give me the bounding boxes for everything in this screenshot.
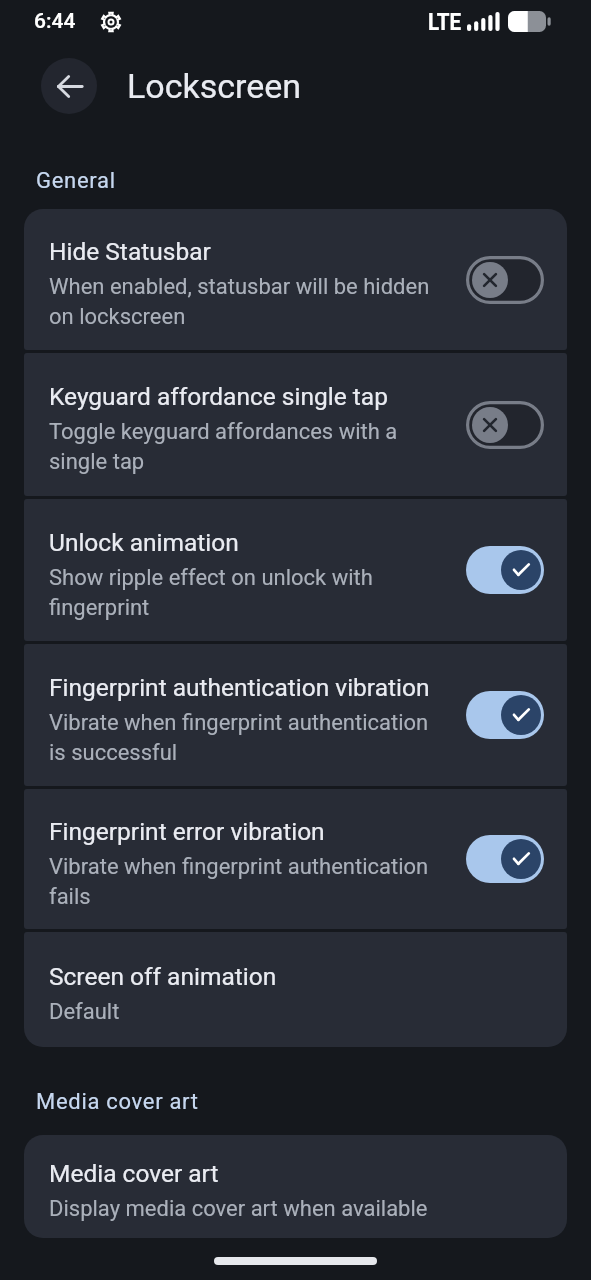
staticText: Vibrate when fingerprint authentication … xyxy=(49,850,442,910)
staticText: Toggle keyguard affordances with a singl… xyxy=(49,415,442,475)
button[interactable]: Toggle Hide Statusbar xyxy=(466,256,544,304)
button[interactable]: Toggle Fingerprint authentication vibrat… xyxy=(466,691,544,739)
staticText: General xyxy=(36,168,116,194)
staticText: Lockscreen xyxy=(127,66,302,106)
staticText: Media cover art xyxy=(36,1089,199,1115)
staticText: Vibrate when fingerprint authentication … xyxy=(49,706,442,766)
staticText: Media cover art xyxy=(49,1157,219,1189)
button[interactable]: Unlock animation xyxy=(24,499,567,641)
button[interactable]: Keyguard affordance single tap xyxy=(24,353,567,496)
button[interactable]: Toggle Keyguard affordance single tap xyxy=(466,401,544,449)
button[interactable]: Fingerprint authentication vibration xyxy=(24,644,567,786)
staticText: Hide Statusbar xyxy=(49,235,211,267)
staticText: Fingerprint authentication vibration xyxy=(49,671,430,703)
button[interactable]: Screen off animation xyxy=(24,932,567,1047)
button[interactable]: Fingerprint error vibration xyxy=(24,789,567,929)
staticText: Unlock animation xyxy=(49,526,239,558)
button[interactable]: Media cover art xyxy=(24,1135,567,1238)
button[interactable]: Back xyxy=(41,58,97,114)
staticText: LTE xyxy=(428,7,462,36)
staticText: Keyguard affordance single tap xyxy=(49,380,388,412)
staticText: Screen off animation xyxy=(49,960,277,992)
button[interactable]: Hide Statusbar xyxy=(24,209,567,350)
staticText: 6:44 xyxy=(34,9,76,34)
button[interactable]: Toggle Unlock animation xyxy=(466,546,544,594)
staticText: When enabled, statusbar will be hidden o… xyxy=(49,270,442,330)
staticText: Fingerprint error vibration xyxy=(49,815,325,847)
staticText: Default xyxy=(49,995,120,1025)
button[interactable]: Toggle Fingerprint error vibration xyxy=(466,835,544,883)
staticText: Show ripple effect on unlock with finger… xyxy=(49,561,442,621)
staticText: Display media cover art when available xyxy=(49,1192,428,1222)
